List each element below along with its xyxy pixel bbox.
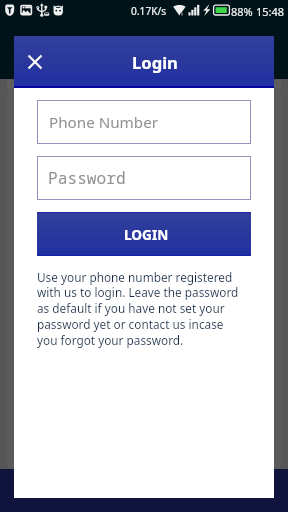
staticText: LOGIN xyxy=(124,225,169,244)
staticText: 88% xyxy=(231,4,253,19)
button[interactable]: Phone Number xyxy=(37,100,251,144)
button[interactable]: LOGIN xyxy=(37,212,251,256)
staticText: 0.17K/s xyxy=(131,4,167,18)
button[interactable]: Close xyxy=(13,40,57,84)
staticText: Use your phone number registered with us… xyxy=(37,269,243,349)
staticText: Phone Number xyxy=(49,112,158,133)
button[interactable]: Password xyxy=(37,156,251,200)
staticText: Password xyxy=(48,167,126,189)
staticText: 15:48 xyxy=(256,4,285,19)
staticText: Login xyxy=(132,51,178,74)
